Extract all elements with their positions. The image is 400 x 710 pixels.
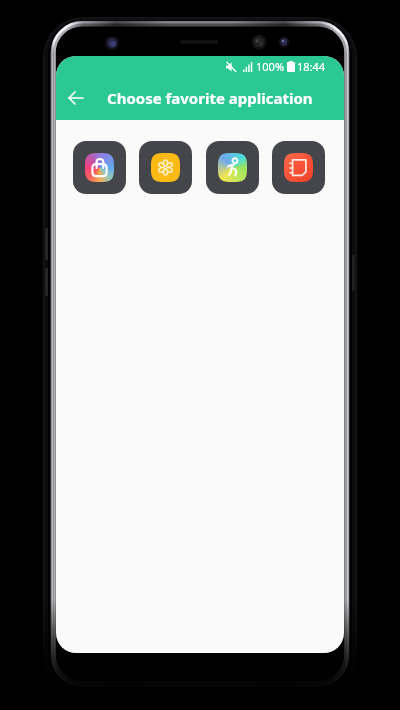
staticText: Choose favorite application (107, 88, 313, 108)
button[interactable]: Galaxy Themes (139, 141, 192, 194)
button[interactable]: Samsung Notes (272, 141, 325, 194)
button[interactable]: Samsung Health (206, 141, 259, 194)
button[interactable]: Galaxy Store (73, 141, 126, 194)
staticText: 100% (256, 59, 285, 74)
staticText: 18:44 (297, 59, 326, 74)
button[interactable]: Back (64, 86, 88, 110)
